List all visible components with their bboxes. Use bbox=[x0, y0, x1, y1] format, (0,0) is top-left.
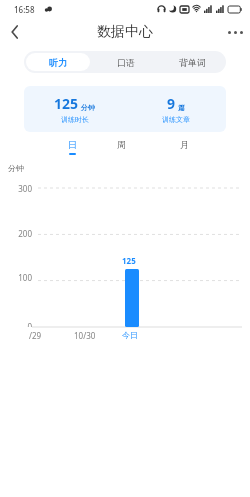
staticText: 0 bbox=[27, 321, 32, 327]
button[interactable]: 听力 bbox=[26, 53, 90, 71]
button[interactable]: Back bbox=[0, 18, 30, 46]
staticText: 300 bbox=[18, 183, 32, 194]
button[interactable]: 周 bbox=[113, 139, 129, 163]
staticText: 月 bbox=[180, 139, 189, 150]
staticText: 口语 bbox=[117, 57, 135, 68]
staticText: /29 bbox=[29, 330, 42, 341]
staticText: 200 bbox=[18, 228, 32, 239]
button[interactable]: 背单词 bbox=[161, 53, 224, 71]
staticText: 125 bbox=[54, 94, 79, 113]
staticText: 16:58 bbox=[14, 4, 35, 15]
staticText: 背单词 bbox=[179, 57, 206, 68]
staticText: 分钟 bbox=[81, 103, 95, 112]
button[interactable]: 口语 bbox=[94, 53, 157, 71]
button[interactable]: 125 bbox=[24, 86, 226, 132]
staticText: 训练时长 bbox=[61, 115, 89, 124]
staticText: 分钟 bbox=[8, 163, 24, 173]
staticText: 训练文章 bbox=[162, 115, 190, 124]
staticText: 10/30 bbox=[74, 330, 96, 341]
button[interactable]: 日 bbox=[64, 139, 80, 163]
staticText: 125 bbox=[122, 255, 136, 266]
staticText: 9 bbox=[167, 94, 176, 113]
staticText: 听力 bbox=[49, 57, 67, 68]
staticText: 100 bbox=[18, 272, 32, 283]
button[interactable]: 月 bbox=[176, 139, 192, 163]
staticText: 篇 bbox=[178, 103, 185, 112]
button[interactable]: More options bbox=[220, 18, 250, 46]
staticText: 数据中心 bbox=[97, 23, 153, 41]
staticText: 今日 bbox=[122, 330, 138, 340]
staticText: 日 bbox=[68, 139, 77, 150]
staticText: 周 bbox=[117, 139, 126, 150]
